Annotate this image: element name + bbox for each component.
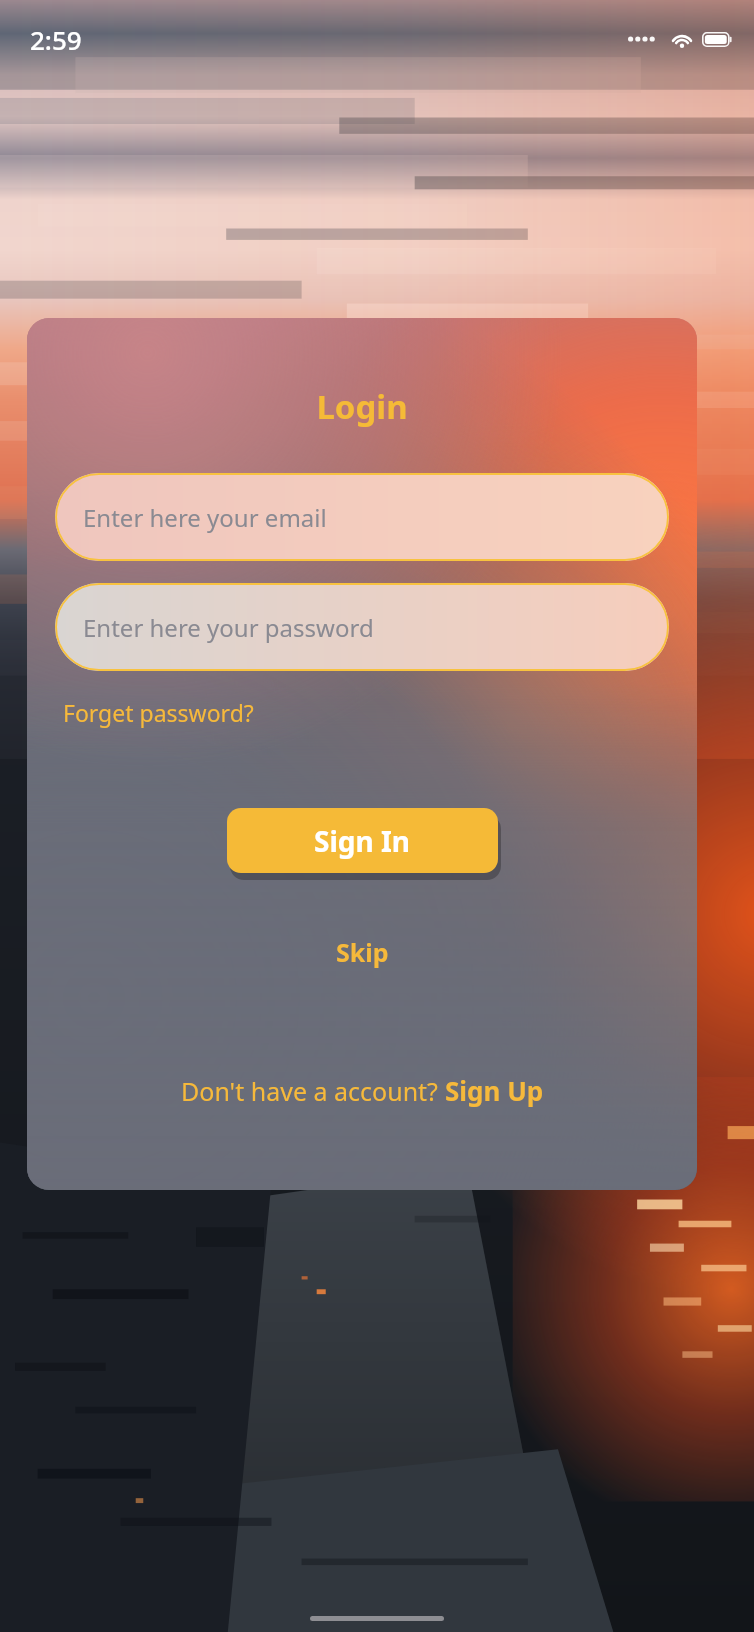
button[interactable]: Forget password? bbox=[57, 693, 260, 732]
staticText: Enter here your password bbox=[83, 611, 374, 644]
staticText: Login bbox=[27, 384, 697, 429]
button[interactable]: Enter here your password bbox=[55, 583, 669, 671]
staticText: Forget password? bbox=[63, 697, 254, 728]
staticText: Skip bbox=[336, 935, 389, 969]
button[interactable]: Don't have a account? bbox=[171, 1067, 554, 1114]
staticText: 2:59 bbox=[30, 22, 82, 57]
staticText: Don't have a account? bbox=[181, 1074, 445, 1108]
staticText: Sign Up bbox=[445, 1073, 544, 1108]
button[interactable]: Sign In bbox=[227, 808, 498, 873]
button[interactable]: Enter here your email bbox=[55, 473, 669, 561]
button[interactable]: Skip bbox=[320, 929, 405, 975]
staticText: Sign In bbox=[314, 822, 411, 860]
staticText: Enter here your email bbox=[83, 501, 327, 534]
